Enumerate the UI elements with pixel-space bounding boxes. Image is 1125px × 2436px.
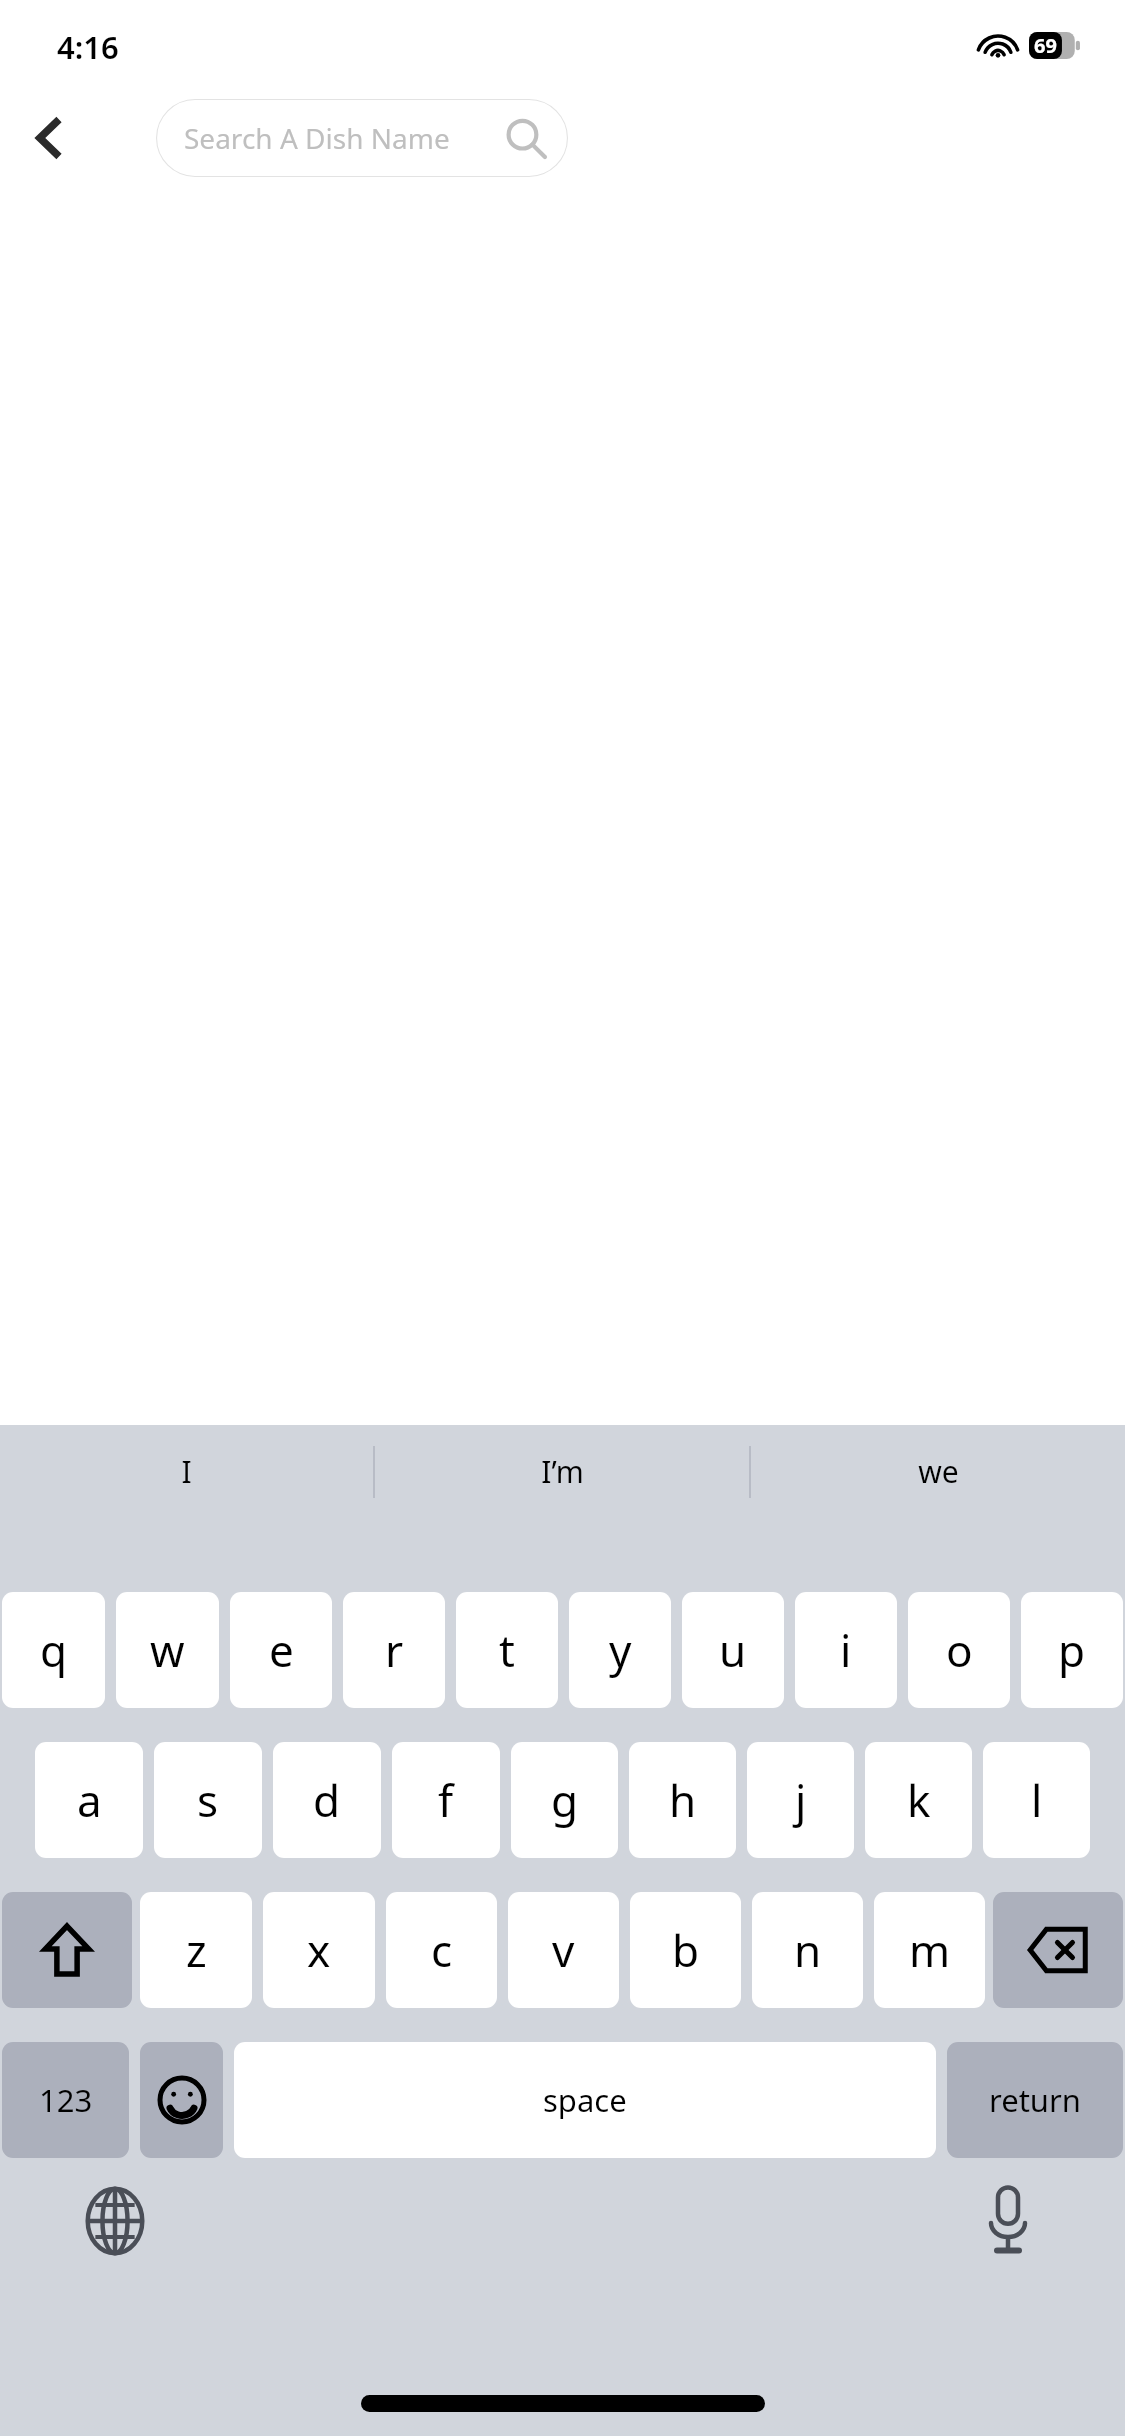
button[interactable]: r xyxy=(343,1592,445,1708)
staticText: r xyxy=(385,1620,404,1680)
button[interactable]: Backspace xyxy=(993,1892,1123,2008)
button[interactable]: Shift xyxy=(2,1892,132,2008)
staticText: x xyxy=(307,1920,331,1980)
staticText: w xyxy=(150,1620,185,1680)
staticText: return xyxy=(989,2079,1081,2121)
staticText: h xyxy=(669,1770,697,1830)
button[interactable]: n xyxy=(752,1892,863,2008)
staticText: f xyxy=(438,1770,454,1830)
staticText: n xyxy=(794,1920,822,1980)
staticText: p xyxy=(1058,1620,1086,1680)
button[interactable]: g xyxy=(511,1742,618,1858)
button[interactable]: Emoji xyxy=(140,2042,223,2158)
button[interactable]: y xyxy=(569,1592,671,1708)
button[interactable]: k xyxy=(865,1742,972,1858)
button[interactable]: 123 xyxy=(2,2042,129,2158)
staticText: 4:16 xyxy=(57,26,119,68)
staticText: y xyxy=(609,1620,632,1680)
staticText: d xyxy=(313,1770,341,1830)
button[interactable]: m xyxy=(874,1892,985,2008)
button[interactable]: space xyxy=(234,2042,936,2158)
button[interactable]: Search A Dish Name xyxy=(156,99,568,177)
staticText: e xyxy=(269,1620,294,1680)
staticText: o xyxy=(946,1620,973,1680)
staticText: b xyxy=(672,1920,700,1980)
staticText: c xyxy=(431,1920,453,1980)
staticText: j xyxy=(795,1770,807,1830)
staticText: q xyxy=(40,1620,68,1680)
staticText: Search A Dish Name xyxy=(184,119,450,157)
staticText: i xyxy=(840,1620,852,1680)
button[interactable]: Dictate xyxy=(973,2186,1043,2256)
button[interactable]: o xyxy=(908,1592,1010,1708)
button[interactable]: I xyxy=(0,1425,373,1518)
button[interactable]: b xyxy=(630,1892,741,2008)
button[interactable]: I’m xyxy=(375,1425,749,1518)
staticText: l xyxy=(1031,1770,1043,1830)
button[interactable]: q xyxy=(2,1592,105,1708)
staticText: z xyxy=(186,1920,207,1980)
button[interactable]: a xyxy=(35,1742,143,1858)
staticText: 69 xyxy=(1034,32,1057,59)
button[interactable]: Change keyboard xyxy=(80,2186,150,2256)
staticText: m xyxy=(909,1920,951,1980)
button[interactable]: j xyxy=(747,1742,854,1858)
button[interactable]: l xyxy=(983,1742,1090,1858)
staticText: u xyxy=(719,1620,747,1680)
button[interactable]: v xyxy=(508,1892,619,2008)
button[interactable]: p xyxy=(1021,1592,1123,1708)
button[interactable]: d xyxy=(273,1742,381,1858)
staticText: I xyxy=(181,1451,192,1492)
button[interactable]: Back xyxy=(14,102,86,174)
button[interactable]: z xyxy=(140,1892,252,2008)
staticText: g xyxy=(551,1770,579,1830)
staticText: s xyxy=(197,1770,219,1830)
button[interactable]: s xyxy=(154,1742,262,1858)
button[interactable]: f xyxy=(392,1742,500,1858)
button[interactable]: e xyxy=(230,1592,332,1708)
button[interactable]: u xyxy=(682,1592,784,1708)
button[interactable]: we xyxy=(751,1425,1125,1518)
button[interactable]: c xyxy=(386,1892,497,2008)
staticText: space xyxy=(543,2079,627,2121)
button[interactable]: h xyxy=(629,1742,736,1858)
staticText: we xyxy=(918,1451,959,1492)
button[interactable]: return xyxy=(947,2042,1123,2158)
staticText: t xyxy=(499,1620,515,1680)
staticText: v xyxy=(552,1920,575,1980)
staticText: I’m xyxy=(541,1451,584,1492)
button[interactable]: i xyxy=(795,1592,897,1708)
button[interactable]: w xyxy=(116,1592,219,1708)
button[interactable]: t xyxy=(456,1592,558,1708)
staticText: 123 xyxy=(39,2079,93,2121)
button[interactable]: x xyxy=(263,1892,375,2008)
staticText: a xyxy=(77,1770,102,1830)
staticText: k xyxy=(907,1770,931,1830)
